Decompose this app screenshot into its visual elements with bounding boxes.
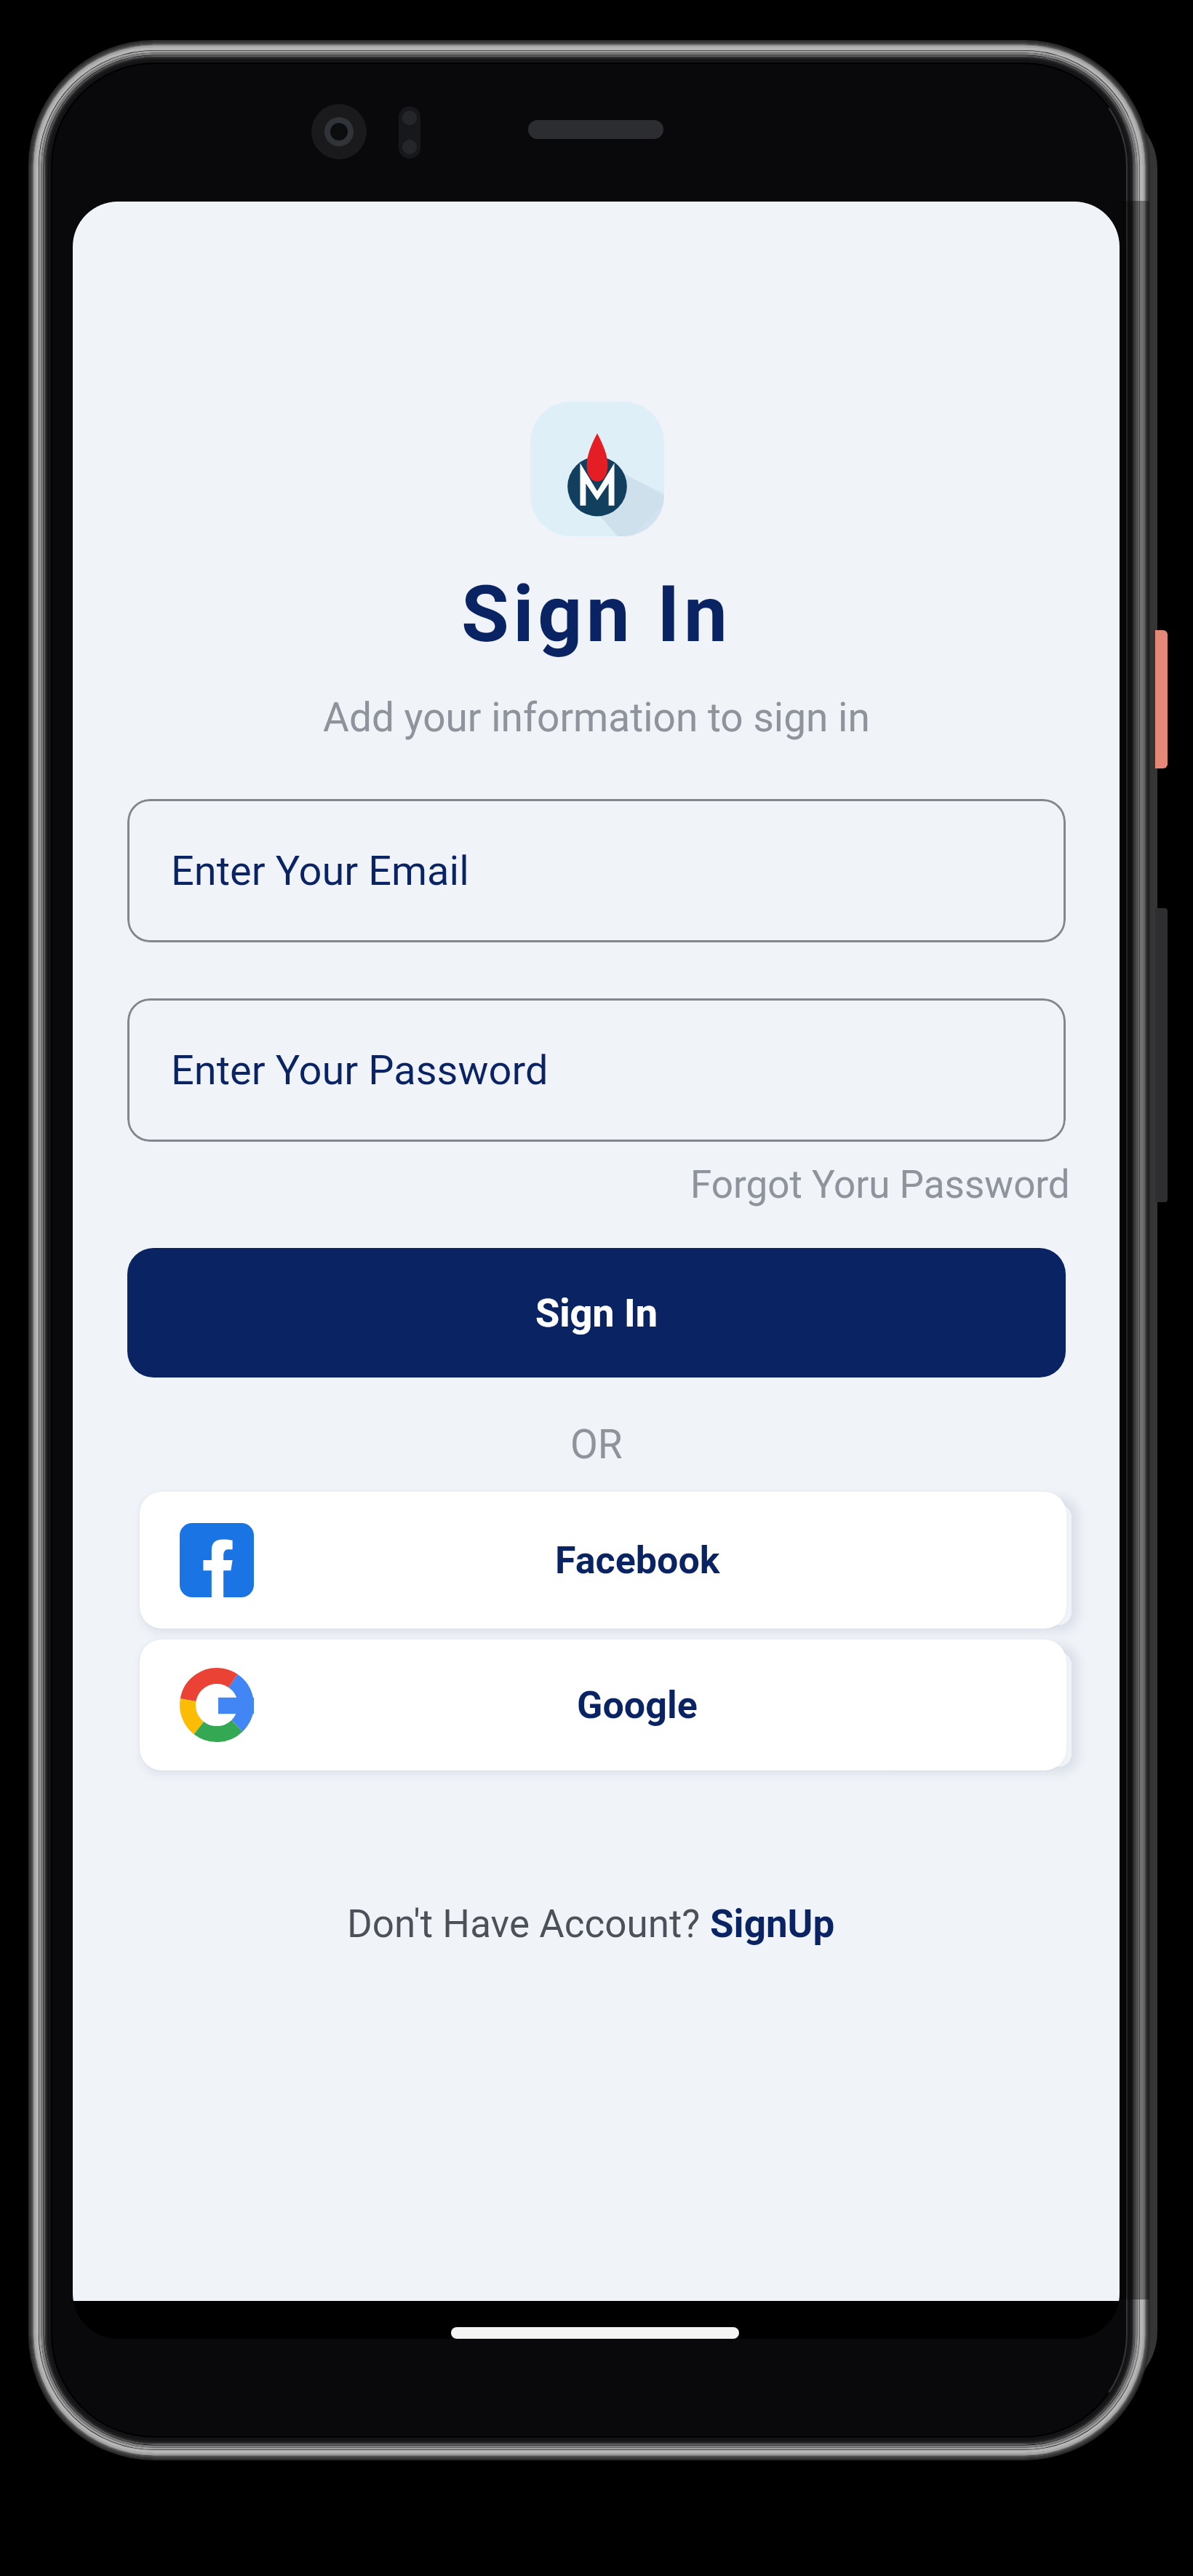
staticText: Enter Your Password bbox=[171, 1046, 548, 1094]
staticText: Sign In bbox=[461, 569, 732, 660]
staticText: Facebook bbox=[555, 1538, 720, 1583]
staticText: SignUp bbox=[710, 1901, 835, 1947]
button[interactable]: Enter Your Email bbox=[127, 799, 1066, 942]
staticText: Enter Your Email bbox=[171, 847, 469, 895]
button[interactable]: Sign In bbox=[127, 1248, 1066, 1378]
button[interactable]: Sign in with Facebook bbox=[140, 1492, 1066, 1629]
button[interactable]: SignUp bbox=[710, 1901, 835, 1947]
button[interactable]: Sign in with Google bbox=[140, 1639, 1066, 1770]
staticText: OR bbox=[570, 1421, 623, 1468]
other: Sign in with Facebook bbox=[180, 1523, 254, 1597]
staticText: Forgot Yoru Password bbox=[690, 1162, 1070, 1207]
staticText: Add your information to sign in bbox=[323, 694, 870, 741]
button[interactable]: Forgot Yoru Password bbox=[690, 1162, 1070, 1207]
staticText: Don't Have Account? bbox=[347, 1901, 710, 1947]
staticText: Sign In bbox=[535, 1290, 658, 1336]
other: Sign in with Google bbox=[180, 1668, 254, 1742]
button[interactable]: Enter Your Password bbox=[127, 998, 1066, 1142]
staticText: Google bbox=[577, 1683, 698, 1728]
